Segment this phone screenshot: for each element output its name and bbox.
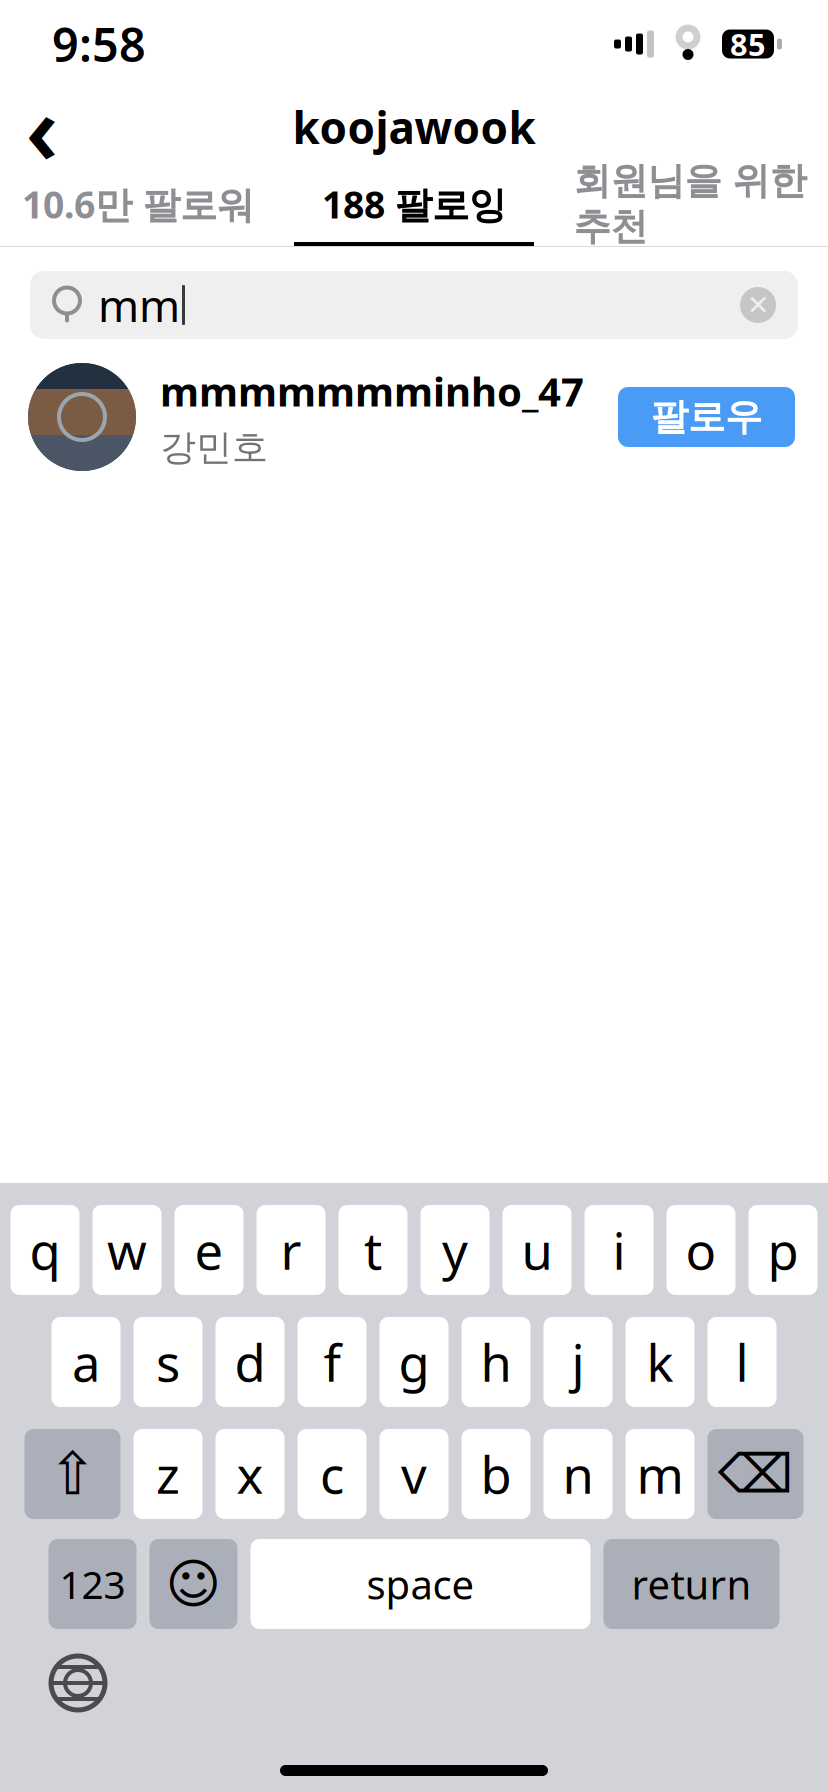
button[interactable]: q bbox=[10, 1205, 79, 1295]
button[interactable]: n bbox=[543, 1429, 612, 1519]
staticText: ⇧ bbox=[48, 1441, 97, 1507]
button[interactable]: Back bbox=[0, 89, 84, 165]
button[interactable]: r bbox=[256, 1205, 325, 1295]
staticText: o bbox=[685, 1216, 716, 1284]
staticText: y bbox=[442, 1216, 468, 1284]
staticText: b bbox=[480, 1440, 511, 1508]
button[interactable]: e bbox=[174, 1205, 243, 1295]
staticText: z bbox=[156, 1440, 180, 1508]
button[interactable]: w bbox=[92, 1205, 161, 1295]
button[interactable]: p bbox=[748, 1205, 817, 1295]
button[interactable]: d bbox=[215, 1317, 284, 1407]
staticText: 188 팔로잉 bbox=[322, 179, 506, 229]
button[interactable]: Shift bbox=[24, 1429, 120, 1519]
staticText: h bbox=[480, 1328, 511, 1396]
button[interactable]: 10.6만 팔로워 bbox=[0, 166, 276, 246]
staticText: n bbox=[562, 1440, 593, 1508]
button[interactable]: 팔로우 bbox=[618, 387, 795, 447]
staticText: m bbox=[636, 1440, 683, 1508]
staticText: 회원님을 위한 추천 bbox=[573, 158, 806, 250]
staticText: mmmmmmminho_47 bbox=[160, 364, 584, 417]
button[interactable]: Delete bbox=[707, 1429, 803, 1519]
staticText: c bbox=[320, 1440, 344, 1508]
staticText: mm bbox=[98, 276, 180, 334]
staticText: ⌫ bbox=[718, 1444, 793, 1504]
staticText: return bbox=[631, 1557, 751, 1610]
button[interactable]: return bbox=[603, 1539, 779, 1629]
button[interactable]: 123 bbox=[48, 1539, 136, 1629]
button[interactable]: c bbox=[297, 1429, 366, 1519]
button[interactable]: 회원님을 위한 추천 bbox=[552, 166, 828, 246]
staticText: k bbox=[646, 1328, 673, 1396]
button[interactable]: mmmmmmminho_47 bbox=[0, 339, 828, 471]
button[interactable]: t bbox=[338, 1205, 407, 1295]
button[interactable]: x bbox=[215, 1429, 284, 1519]
button[interactable]: i bbox=[584, 1205, 653, 1295]
staticText: u bbox=[521, 1216, 552, 1284]
staticText: d bbox=[234, 1328, 265, 1396]
staticText: j bbox=[571, 1328, 584, 1396]
button[interactable]: y bbox=[420, 1205, 489, 1295]
button[interactable]: z bbox=[133, 1429, 202, 1519]
staticText: w bbox=[107, 1216, 147, 1284]
button[interactable]: s bbox=[133, 1317, 202, 1407]
staticText: ☺ bbox=[165, 1554, 221, 1614]
button[interactable]: space bbox=[250, 1539, 590, 1629]
button[interactable]: u bbox=[502, 1205, 571, 1295]
staticText: p bbox=[767, 1216, 798, 1284]
button[interactable]: mm bbox=[0, 247, 828, 339]
staticText: x bbox=[236, 1440, 263, 1508]
staticText: e bbox=[194, 1216, 223, 1284]
staticText: t bbox=[364, 1216, 382, 1284]
button[interactable]: o bbox=[666, 1205, 735, 1295]
staticText: r bbox=[280, 1216, 301, 1284]
staticText: ‹ bbox=[25, 63, 58, 191]
staticText: 팔로우 bbox=[651, 394, 762, 440]
button[interactable]: a bbox=[51, 1317, 120, 1407]
button[interactable]: h bbox=[461, 1317, 530, 1407]
staticText: f bbox=[323, 1328, 340, 1396]
staticText: l bbox=[735, 1328, 748, 1396]
staticText: 9:58 bbox=[52, 13, 146, 75]
button[interactable]: Next keyboard bbox=[30, 1643, 126, 1723]
staticText: v bbox=[401, 1440, 427, 1508]
button[interactable]: 188 팔로잉 bbox=[276, 166, 552, 246]
button[interactable]: Emoji bbox=[149, 1539, 237, 1629]
staticText: space bbox=[366, 1557, 474, 1610]
button[interactable]: b bbox=[461, 1429, 530, 1519]
button[interactable]: k bbox=[625, 1317, 694, 1407]
staticText: a bbox=[72, 1328, 100, 1396]
button[interactable]: f bbox=[297, 1317, 366, 1407]
staticText: 85 bbox=[730, 24, 766, 64]
staticText: g bbox=[398, 1328, 429, 1396]
staticText: 10.6만 팔로워 bbox=[22, 179, 254, 229]
button[interactable]: l bbox=[707, 1317, 776, 1407]
staticText: 123 bbox=[59, 1558, 125, 1610]
button[interactable]: v bbox=[379, 1429, 448, 1519]
staticText: s bbox=[156, 1328, 180, 1396]
staticText: q bbox=[29, 1216, 60, 1284]
button[interactable]: g bbox=[379, 1317, 448, 1407]
staticText: ✕ bbox=[747, 290, 769, 320]
staticText: i bbox=[612, 1216, 625, 1284]
staticText: 강민호 bbox=[160, 425, 268, 470]
button[interactable]: j bbox=[543, 1317, 612, 1407]
staticText: koojawook bbox=[292, 98, 535, 156]
button[interactable]: m bbox=[625, 1429, 694, 1519]
